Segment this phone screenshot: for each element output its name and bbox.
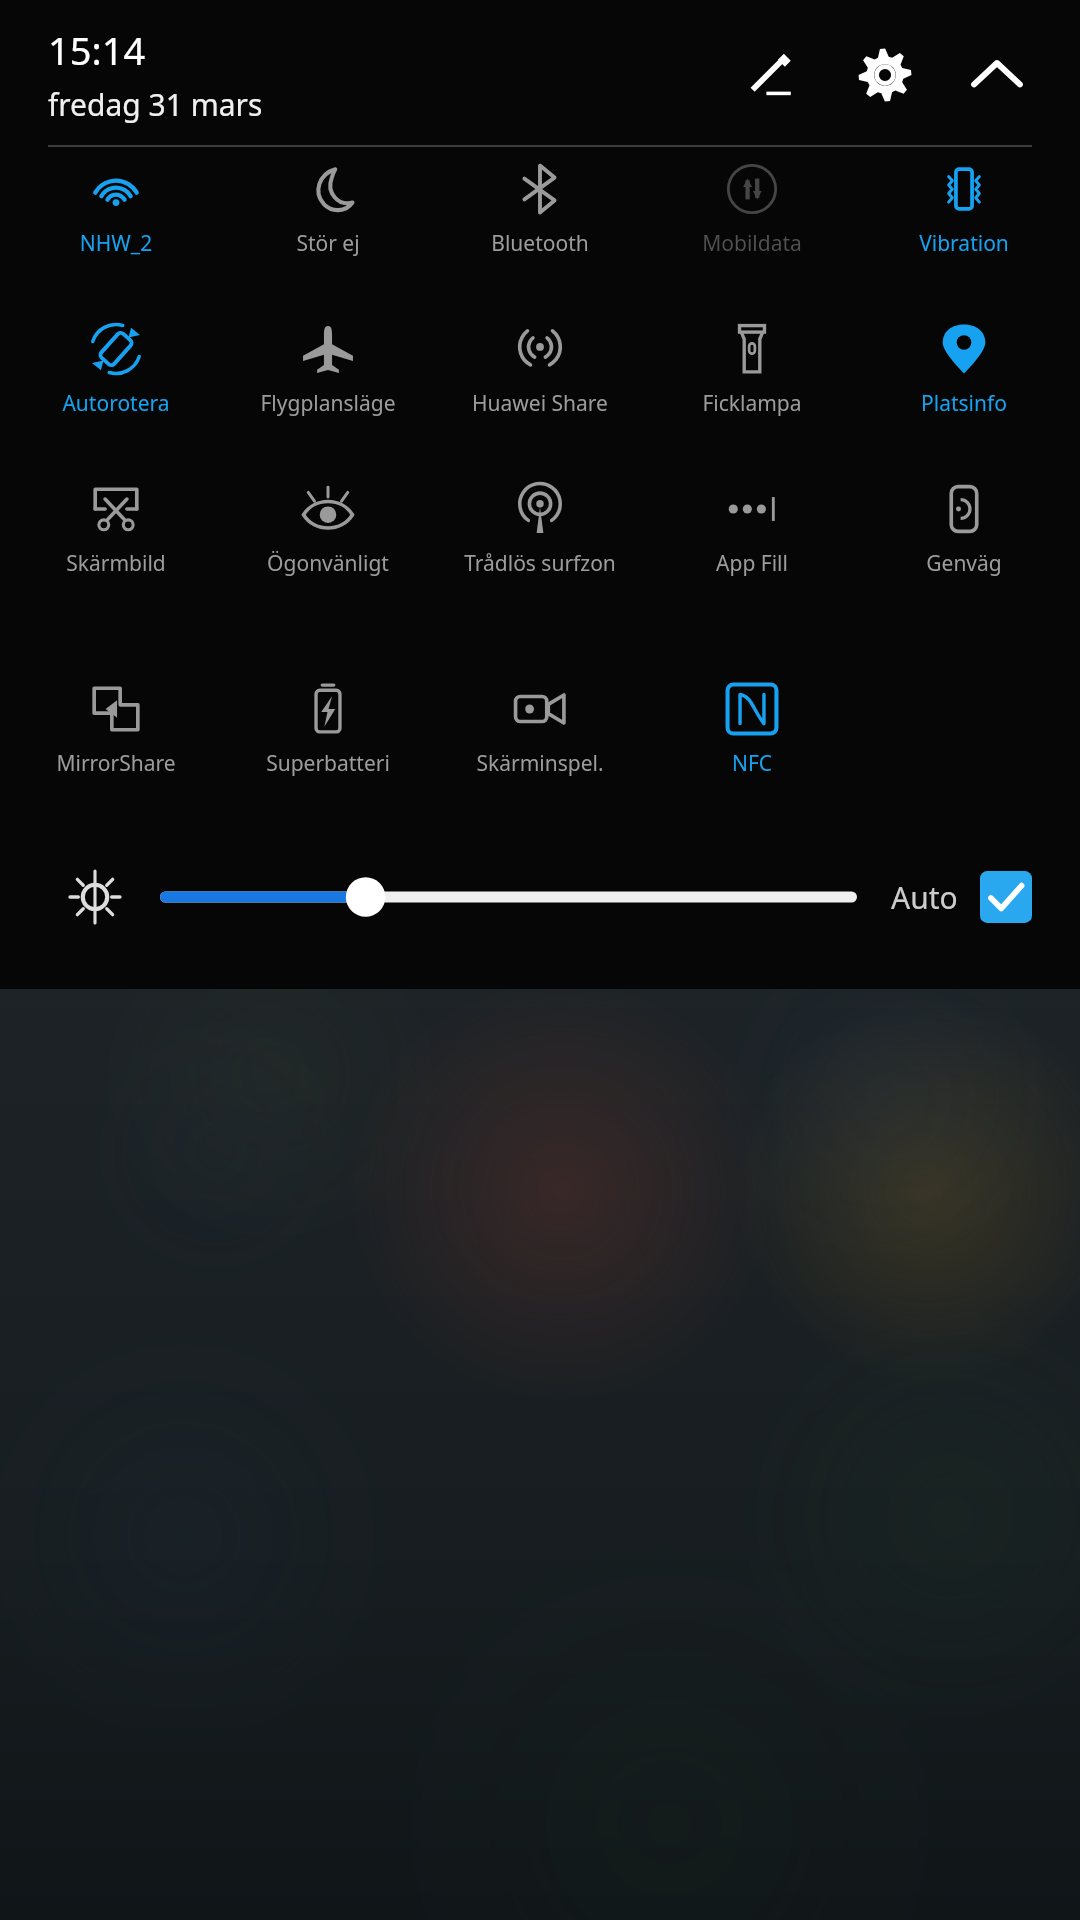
button[interactable]: Settings [842,32,928,118]
button[interactable]: Auto [891,871,1032,923]
staticText: NFC [646,749,858,778]
button[interactable]: Flygplansläge [222,307,434,467]
button[interactable] [160,867,857,927]
staticText: Autorotera [10,389,222,418]
button[interactable]: Huawei Share [434,307,646,467]
button[interactable]: NHW_2 [10,147,222,307]
button[interactable]: Vibration [858,147,1070,307]
staticText: App Fill [646,549,858,578]
staticText: MirrorShare [10,749,222,778]
button[interactable]: Genväg [858,467,1070,667]
staticText: NHW_2 [10,229,222,258]
staticText: Flygplansläge [222,389,434,418]
staticText: Stör ej [222,229,434,258]
button[interactable]: Bluetooth [434,147,646,307]
button[interactable]: Brightness [60,862,130,932]
button[interactable]: Ficklampa [646,307,858,467]
button[interactable]: App Fill [646,467,858,667]
staticText: Mobildata [646,229,858,258]
staticText: Auto [891,877,958,918]
staticText: Ögonvänligt [222,549,434,578]
button[interactable]: Collapse [954,32,1040,118]
button[interactable]: Stör ej [222,147,434,307]
staticText: fredag 31 mars [48,84,263,125]
staticText: Vibration [858,229,1070,258]
staticText: Huawei Share [434,389,646,418]
button[interactable]: Mobildata [646,147,858,307]
button[interactable]: Skärminspel. [434,667,646,827]
staticText: Superbatteri [222,749,434,778]
button[interactable]: Skärmbild [10,467,222,667]
button[interactable]: Trådlös surfzon [434,467,646,667]
staticText: Platsinfo [858,389,1070,418]
staticText: Skärminspel. [434,749,646,778]
button[interactable]: Superbatteri [222,667,434,827]
staticText: Trådlös surfzon [434,549,646,578]
staticText: Genväg [858,549,1070,578]
button[interactable]: Platsinfo [858,307,1070,467]
button[interactable]: Ögonvänligt [222,467,434,667]
staticText: Ficklampa [646,389,858,418]
staticText: 15:14 [48,24,146,76]
button[interactable]: Autorotera [10,307,222,467]
staticText: Bluetooth [434,229,646,258]
button[interactable]: Edit [728,32,814,118]
button[interactable]: NFC [646,667,858,827]
button[interactable]: MirrorShare [10,667,222,827]
staticText: Skärmbild [10,549,222,578]
